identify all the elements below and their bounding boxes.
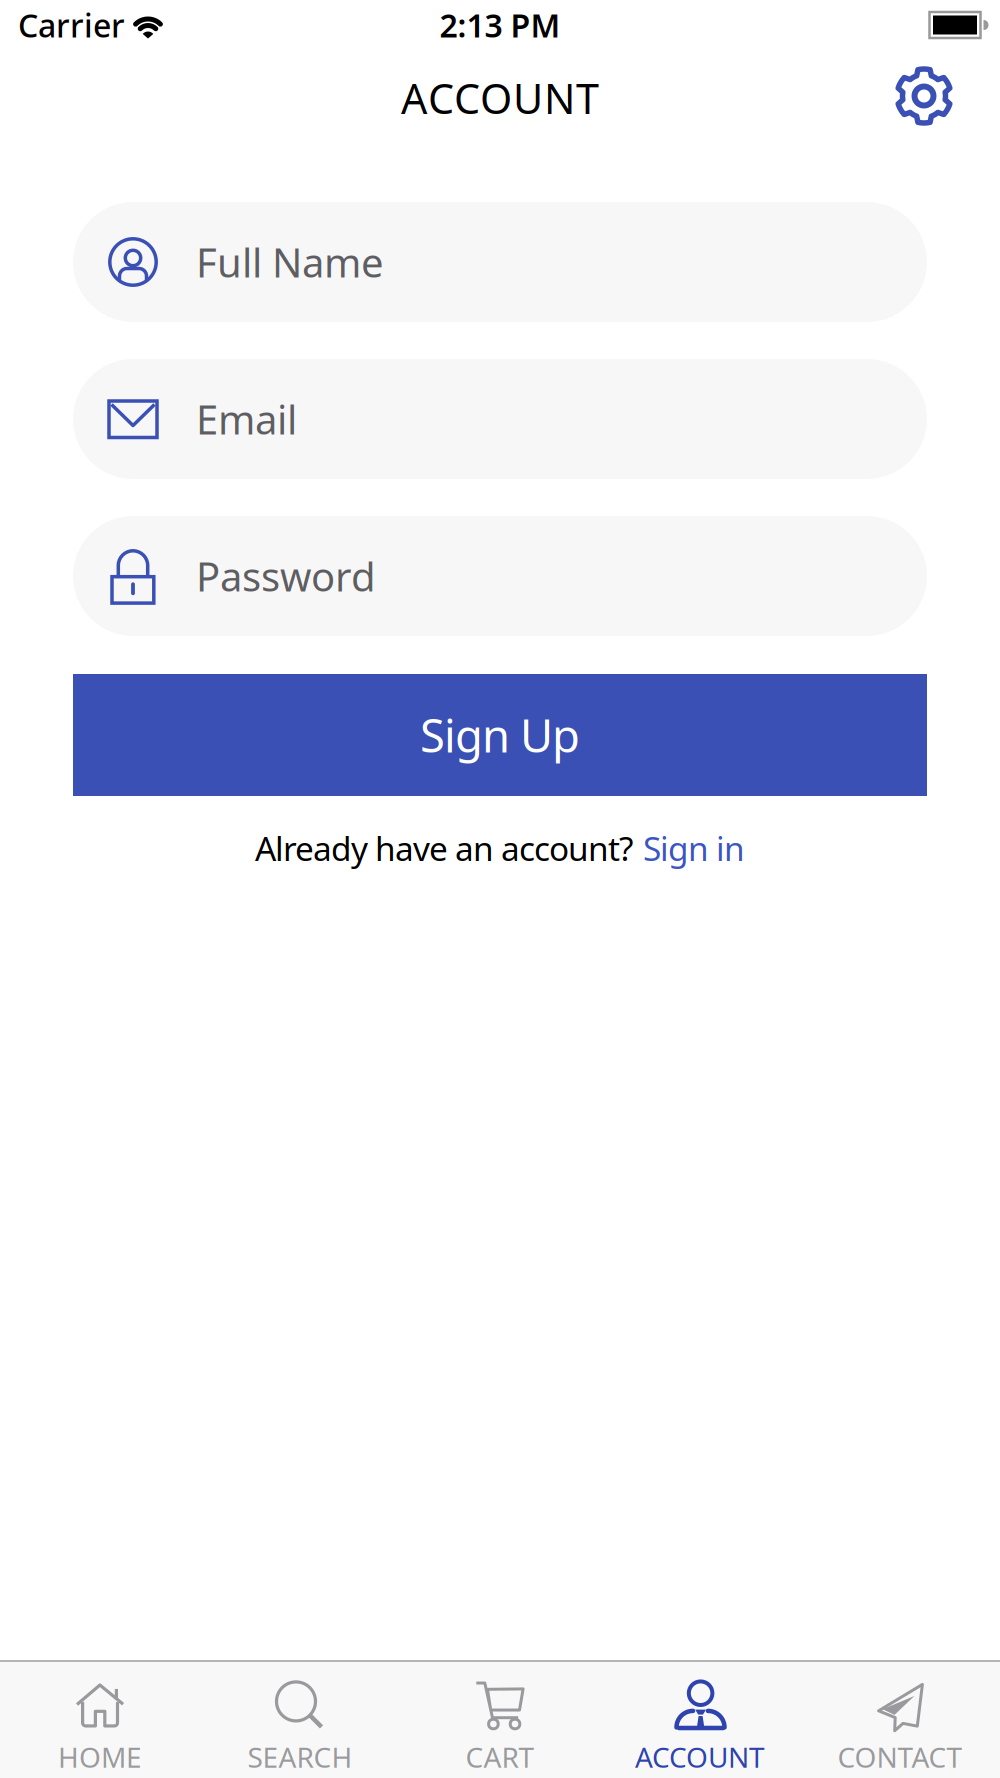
staticText: ACCOUNT <box>635 1738 765 1776</box>
button[interactable]: Email <box>73 359 927 479</box>
button[interactable]: Sign Up <box>73 674 927 796</box>
staticText: CART <box>465 1738 534 1776</box>
button[interactable]: Full Name <box>73 202 927 322</box>
staticText: Sign in <box>643 826 745 870</box>
staticText: HOME <box>58 1738 142 1776</box>
button[interactable]: CONTACT <box>800 1671 1000 1769</box>
button[interactable]: Password <box>73 516 927 636</box>
button[interactable]: HOME <box>0 1671 200 1769</box>
staticText: Sign Up <box>420 705 580 765</box>
staticText: Password <box>196 549 376 602</box>
staticText: ACCOUNT <box>401 71 599 125</box>
button[interactable]: SEARCH <box>200 1671 400 1769</box>
staticText: Already have an account? <box>255 826 633 870</box>
button[interactable]: Settings <box>894 66 954 126</box>
staticText: 2:13 PM <box>439 4 560 46</box>
staticText: Full Name <box>196 235 384 288</box>
button[interactable]: ACCOUNT <box>600 1671 800 1769</box>
button[interactable]: Sign in <box>643 826 745 870</box>
button[interactable]: CART <box>400 1671 600 1769</box>
staticText: Carrier <box>18 4 125 46</box>
staticText: Email <box>196 392 297 445</box>
staticText: CONTACT <box>837 1738 962 1776</box>
staticText: SEARCH <box>247 1738 352 1776</box>
